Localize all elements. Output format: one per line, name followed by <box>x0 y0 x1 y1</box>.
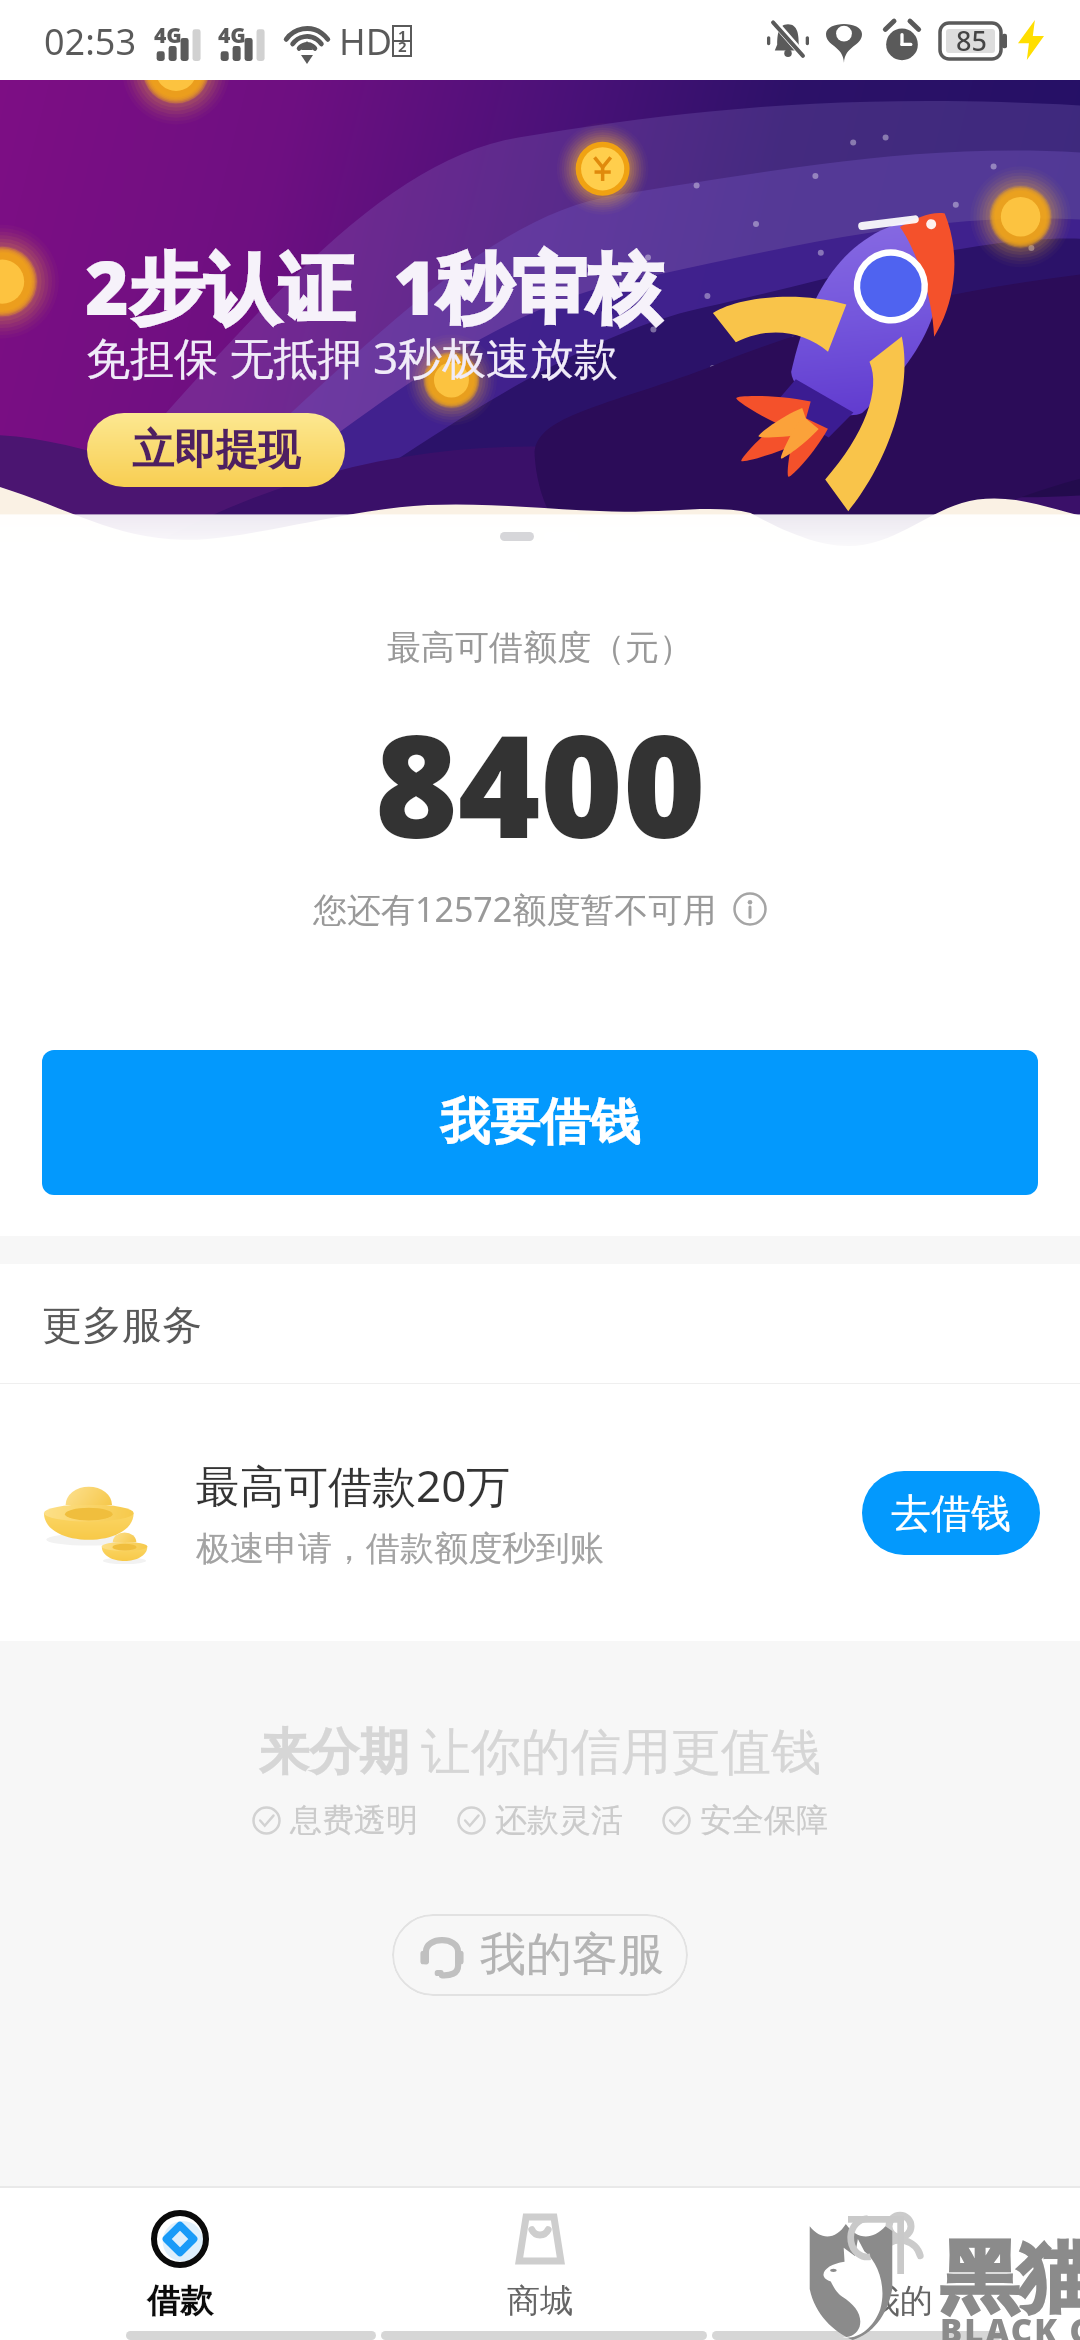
staticText: 息费透明 <box>290 1800 418 1840</box>
staticText: 安全保障 <box>700 1800 828 1840</box>
staticText: 商城 <box>507 2280 573 2322</box>
button[interactable]: 额度说明 <box>733 892 767 926</box>
button[interactable]: 我的客服 <box>392 1914 688 1996</box>
staticText: 黑猫 <box>940 2229 1080 2327</box>
staticText: 8400 <box>375 687 706 879</box>
staticText: 极速申请，借款额度秒到账 <box>196 1527 604 1570</box>
button[interactable]: 最高可借款20万 <box>0 1384 1080 1641</box>
staticText: 更多服务 <box>42 1300 202 1350</box>
staticText: 02:53 <box>44 17 137 66</box>
button[interactable]: 借款 <box>0 2188 360 2340</box>
button[interactable]: 去借钱 <box>862 1471 1040 1555</box>
button[interactable]: 商城 <box>360 2188 720 2340</box>
staticText: 最高可借款20万 <box>196 1455 511 1515</box>
staticText: 我要借钱 <box>440 1091 640 1154</box>
staticText: 1 <box>398 25 407 45</box>
button[interactable]: 2步认证 1秒审核 <box>0 80 1080 560</box>
staticText: 免担保 无抵押 3秒极速放款 <box>86 327 619 387</box>
staticText: 您还有12572额度暂不可用 <box>313 886 717 932</box>
staticText: 2 <box>398 36 407 56</box>
staticText: 4G <box>154 21 182 50</box>
staticText: 85 <box>956 22 987 59</box>
button[interactable]: 我的 <box>720 2188 1080 2340</box>
staticText: 借款 <box>147 2280 213 2322</box>
button[interactable]: 立即提现 <box>87 413 345 487</box>
button[interactable]: 我要借钱 <box>42 1050 1038 1195</box>
staticText: 4G <box>218 21 246 50</box>
staticText: 我的客服 <box>480 1926 664 1984</box>
staticText: 还款灵活 <box>495 1800 623 1840</box>
staticText: 最高可借额度（元） <box>387 626 693 669</box>
staticText: 立即提现 <box>132 424 300 477</box>
staticText: BLACK CAT <box>940 2308 1080 2340</box>
staticText: 来分期 <box>259 1721 409 1784</box>
staticText: 让你的信用更值钱 <box>421 1721 821 1784</box>
staticText: 去借钱 <box>891 1488 1011 1538</box>
staticText: 2步认证 1秒审核 <box>85 235 662 337</box>
staticText: 我的 <box>867 2280 933 2322</box>
staticText: HD <box>339 17 392 66</box>
